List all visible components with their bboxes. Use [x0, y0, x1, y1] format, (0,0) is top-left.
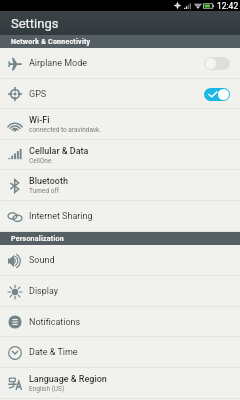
button[interactable]: Date & Time [0, 337, 240, 368]
staticText: Turned off [29, 187, 59, 195]
staticText: 12:42 [217, 1, 239, 11]
staticText: Notifications [29, 317, 81, 328]
button[interactable]: Language & Region [0, 368, 240, 399]
button[interactable]: Airplane Mode [0, 48, 240, 79]
staticText: Language & Region [29, 374, 107, 385]
button[interactable]: Notifications [0, 307, 240, 337]
staticText: Bluetooth [29, 176, 68, 187]
staticText: connected to aravindavk. [29, 126, 102, 134]
staticText: Personalization [11, 235, 64, 243]
button[interactable]: Bluetooth [0, 170, 240, 201]
staticText: CellOne [29, 157, 52, 165]
staticText: Date & Time [29, 347, 78, 358]
button[interactable]: Wi-Fi [0, 109, 240, 140]
staticText: Internet Sharing [29, 211, 93, 222]
staticText: Sound [29, 255, 55, 266]
staticText: Display [29, 286, 59, 297]
staticText: Airplane Mode [29, 58, 88, 69]
button[interactable]: Sound [0, 245, 240, 276]
button[interactable]: GPS [0, 79, 240, 109]
staticText: Network & Connectivity [11, 38, 91, 46]
button[interactable]: Display [0, 276, 240, 307]
staticText: Wi-Fi [29, 115, 50, 126]
button[interactable]: Cellular & Data [0, 140, 240, 170]
button[interactable]: Off [204, 57, 230, 70]
button[interactable]: On [204, 88, 230, 101]
staticText: Cellular & Data [29, 146, 89, 157]
staticText: GPS [29, 89, 47, 100]
staticText: English (US) [29, 385, 65, 393]
button[interactable]: Internet Sharing [0, 201, 240, 232]
staticText: Settings [11, 16, 59, 31]
